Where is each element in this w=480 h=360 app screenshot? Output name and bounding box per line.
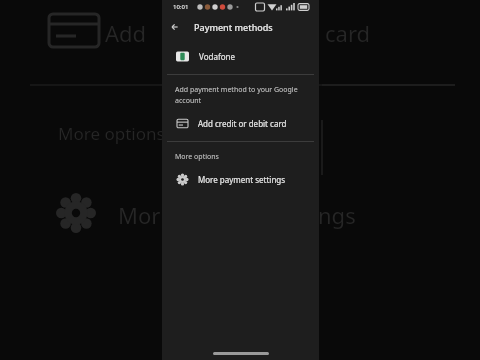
staticText: More options (58, 122, 165, 145)
staticText: More payment settings (198, 174, 286, 185)
staticText: Add (105, 18, 147, 48)
staticText: Payment methods (194, 21, 273, 33)
button[interactable]: Vodafone (162, 43, 319, 69)
staticText: Add payment method to your Google accoun… (175, 85, 303, 105)
staticText: Mor (118, 200, 161, 230)
staticText: ngs (318, 200, 356, 230)
button[interactable]: Add credit or debit card (162, 111, 319, 135)
staticText: Vodafone (199, 51, 235, 62)
staticText: More options (175, 152, 303, 162)
staticText: card (325, 18, 371, 48)
staticText: 10:01 (173, 3, 189, 11)
staticText: Add credit or debit card (198, 118, 287, 129)
button[interactable]: More payment settings (162, 167, 319, 191)
button[interactable]: Back (162, 14, 188, 40)
